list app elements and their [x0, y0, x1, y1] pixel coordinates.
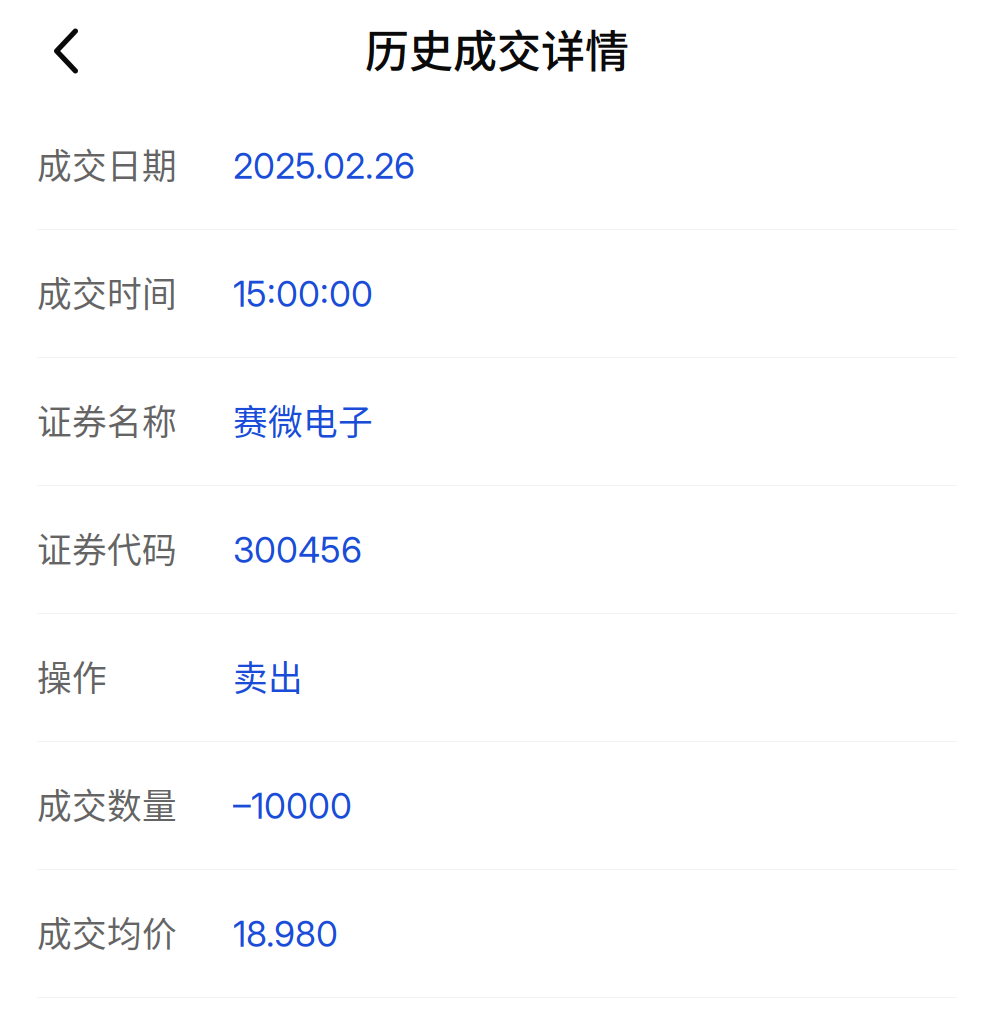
staticText: 证券代码: [37, 523, 177, 573]
staticText: 300456: [233, 529, 362, 571]
staticText: 卖出: [233, 651, 303, 701]
staticText: 成交日期: [37, 139, 177, 189]
staticText: 操作: [37, 651, 107, 701]
button[interactable]: 返回: [37, 0, 95, 102]
staticText: 成交时间: [37, 267, 177, 317]
staticText: –10000: [233, 785, 352, 827]
staticText: 成交均价: [37, 907, 177, 957]
staticText: 历史成交详情: [365, 17, 629, 80]
staticText: 成交数量: [37, 779, 177, 829]
staticText: 18.980: [233, 913, 338, 955]
staticText: 证券名称: [37, 395, 177, 445]
staticText: 赛微电子: [233, 395, 373, 445]
staticText: 15:00:00: [233, 273, 373, 315]
staticText: 2025.02.26: [233, 145, 415, 187]
